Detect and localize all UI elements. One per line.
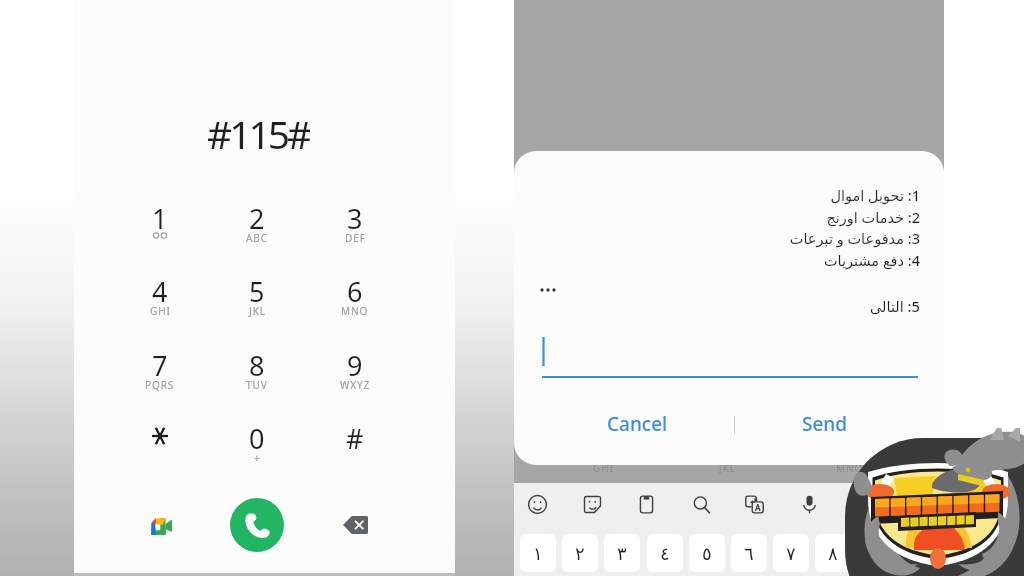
button[interactable]: ٦ [731,534,767,572]
staticText: MNO [836,461,864,475]
staticText: ٤ [660,543,670,564]
staticText: TUV [246,378,268,392]
staticText: Send [802,411,848,437]
staticText: ‏5: التالى [870,296,920,316]
staticText: ٦ [744,543,754,564]
staticText: 2 [249,200,265,237]
staticText: 8 [249,347,265,384]
button[interactable]: ‏4: دفع مشتريات [514,249,944,270]
button[interactable]: Send [749,400,901,448]
button[interactable]: Video call [142,507,178,543]
button[interactable]: #115# [98,107,418,153]
button[interactable]: Call [230,498,284,552]
button[interactable]: Emoji [523,490,551,518]
staticText: ‏4: دفع مشتريات [823,250,920,270]
button[interactable]: Translate [740,490,768,518]
staticText: ٥ [702,543,712,564]
staticText: JKL [249,304,266,318]
staticText: ٨ [828,543,838,564]
button[interactable]: ١ [520,534,556,572]
button[interactable]: Cancel [561,400,713,448]
staticText: GHI [593,461,614,475]
staticText: ABC [246,231,268,245]
staticText: ٩ [871,543,881,564]
staticText: 5 [249,273,265,310]
button[interactable]: Backspace [337,507,373,543]
staticText: DEF [345,231,366,245]
staticText: ٣ [617,543,627,564]
button[interactable]: 3 [319,200,391,256]
staticText: ٢ [575,543,585,564]
button[interactable]: Text input [542,333,918,378]
button[interactable]: 4 [124,273,196,329]
staticText: PQRS [145,378,175,392]
staticText: ١ [533,543,543,564]
staticText: ‏3: مدفوعات و تبرعات [789,228,920,248]
staticText: 1 [152,200,168,237]
button[interactable]: ٣ [604,534,640,572]
button[interactable]: 9 [319,347,391,403]
staticText: 6 [347,273,363,310]
button[interactable]: 2 [221,200,293,256]
staticText: 4 [152,273,168,310]
button[interactable]: ٢ [562,534,598,572]
button[interactable]: 1 [124,200,196,256]
button[interactable]: ٤ [647,534,683,572]
staticText: ‏1: تحويل اموال [830,185,920,205]
button[interactable]: 6 [319,273,391,329]
button[interactable]: 7 [124,347,196,403]
staticText: MNO [341,304,369,318]
staticText: WXYZ [340,378,371,392]
button[interactable]: ‏2: خدمات اورنج [514,206,944,227]
staticText: + [254,451,261,465]
button[interactable]: ٨ [815,534,851,572]
button[interactable]: # [319,420,391,476]
staticText: 7 [152,347,168,384]
staticText: ‏2: خدمات اورنج [826,207,920,227]
button[interactable]: 5 [221,273,293,329]
button[interactable]: 8 [221,347,293,403]
button[interactable]: Clipboard [632,490,660,518]
staticText: #115# [207,107,310,153]
button[interactable]: ٠ [900,534,936,572]
staticText: GHI [150,304,171,318]
staticText: ٧ [786,543,796,564]
button[interactable]: ‏3: مدفوعات و تبرعات [514,227,944,248]
button[interactable]: Voice input [795,490,823,518]
button[interactable]: Search [687,490,715,518]
button[interactable]: ٩ [858,534,894,572]
staticText: 0 [249,420,265,457]
button[interactable]: ‏5: التالى [514,295,944,316]
staticText: 3 [347,200,363,237]
staticText: 9 [347,347,363,384]
button[interactable]: Stickers [578,490,606,518]
button[interactable]: ٥ [689,534,725,572]
staticText: JKL [719,461,736,475]
button[interactable]: ٧ [773,534,809,572]
staticText: ٠ [913,543,923,564]
button[interactable] [124,420,196,476]
button[interactable]: ‏1: تحويل اموال [514,184,944,205]
staticText: Cancel [607,411,668,437]
button[interactable]: 0 [221,420,293,476]
staticText: # [346,420,364,457]
